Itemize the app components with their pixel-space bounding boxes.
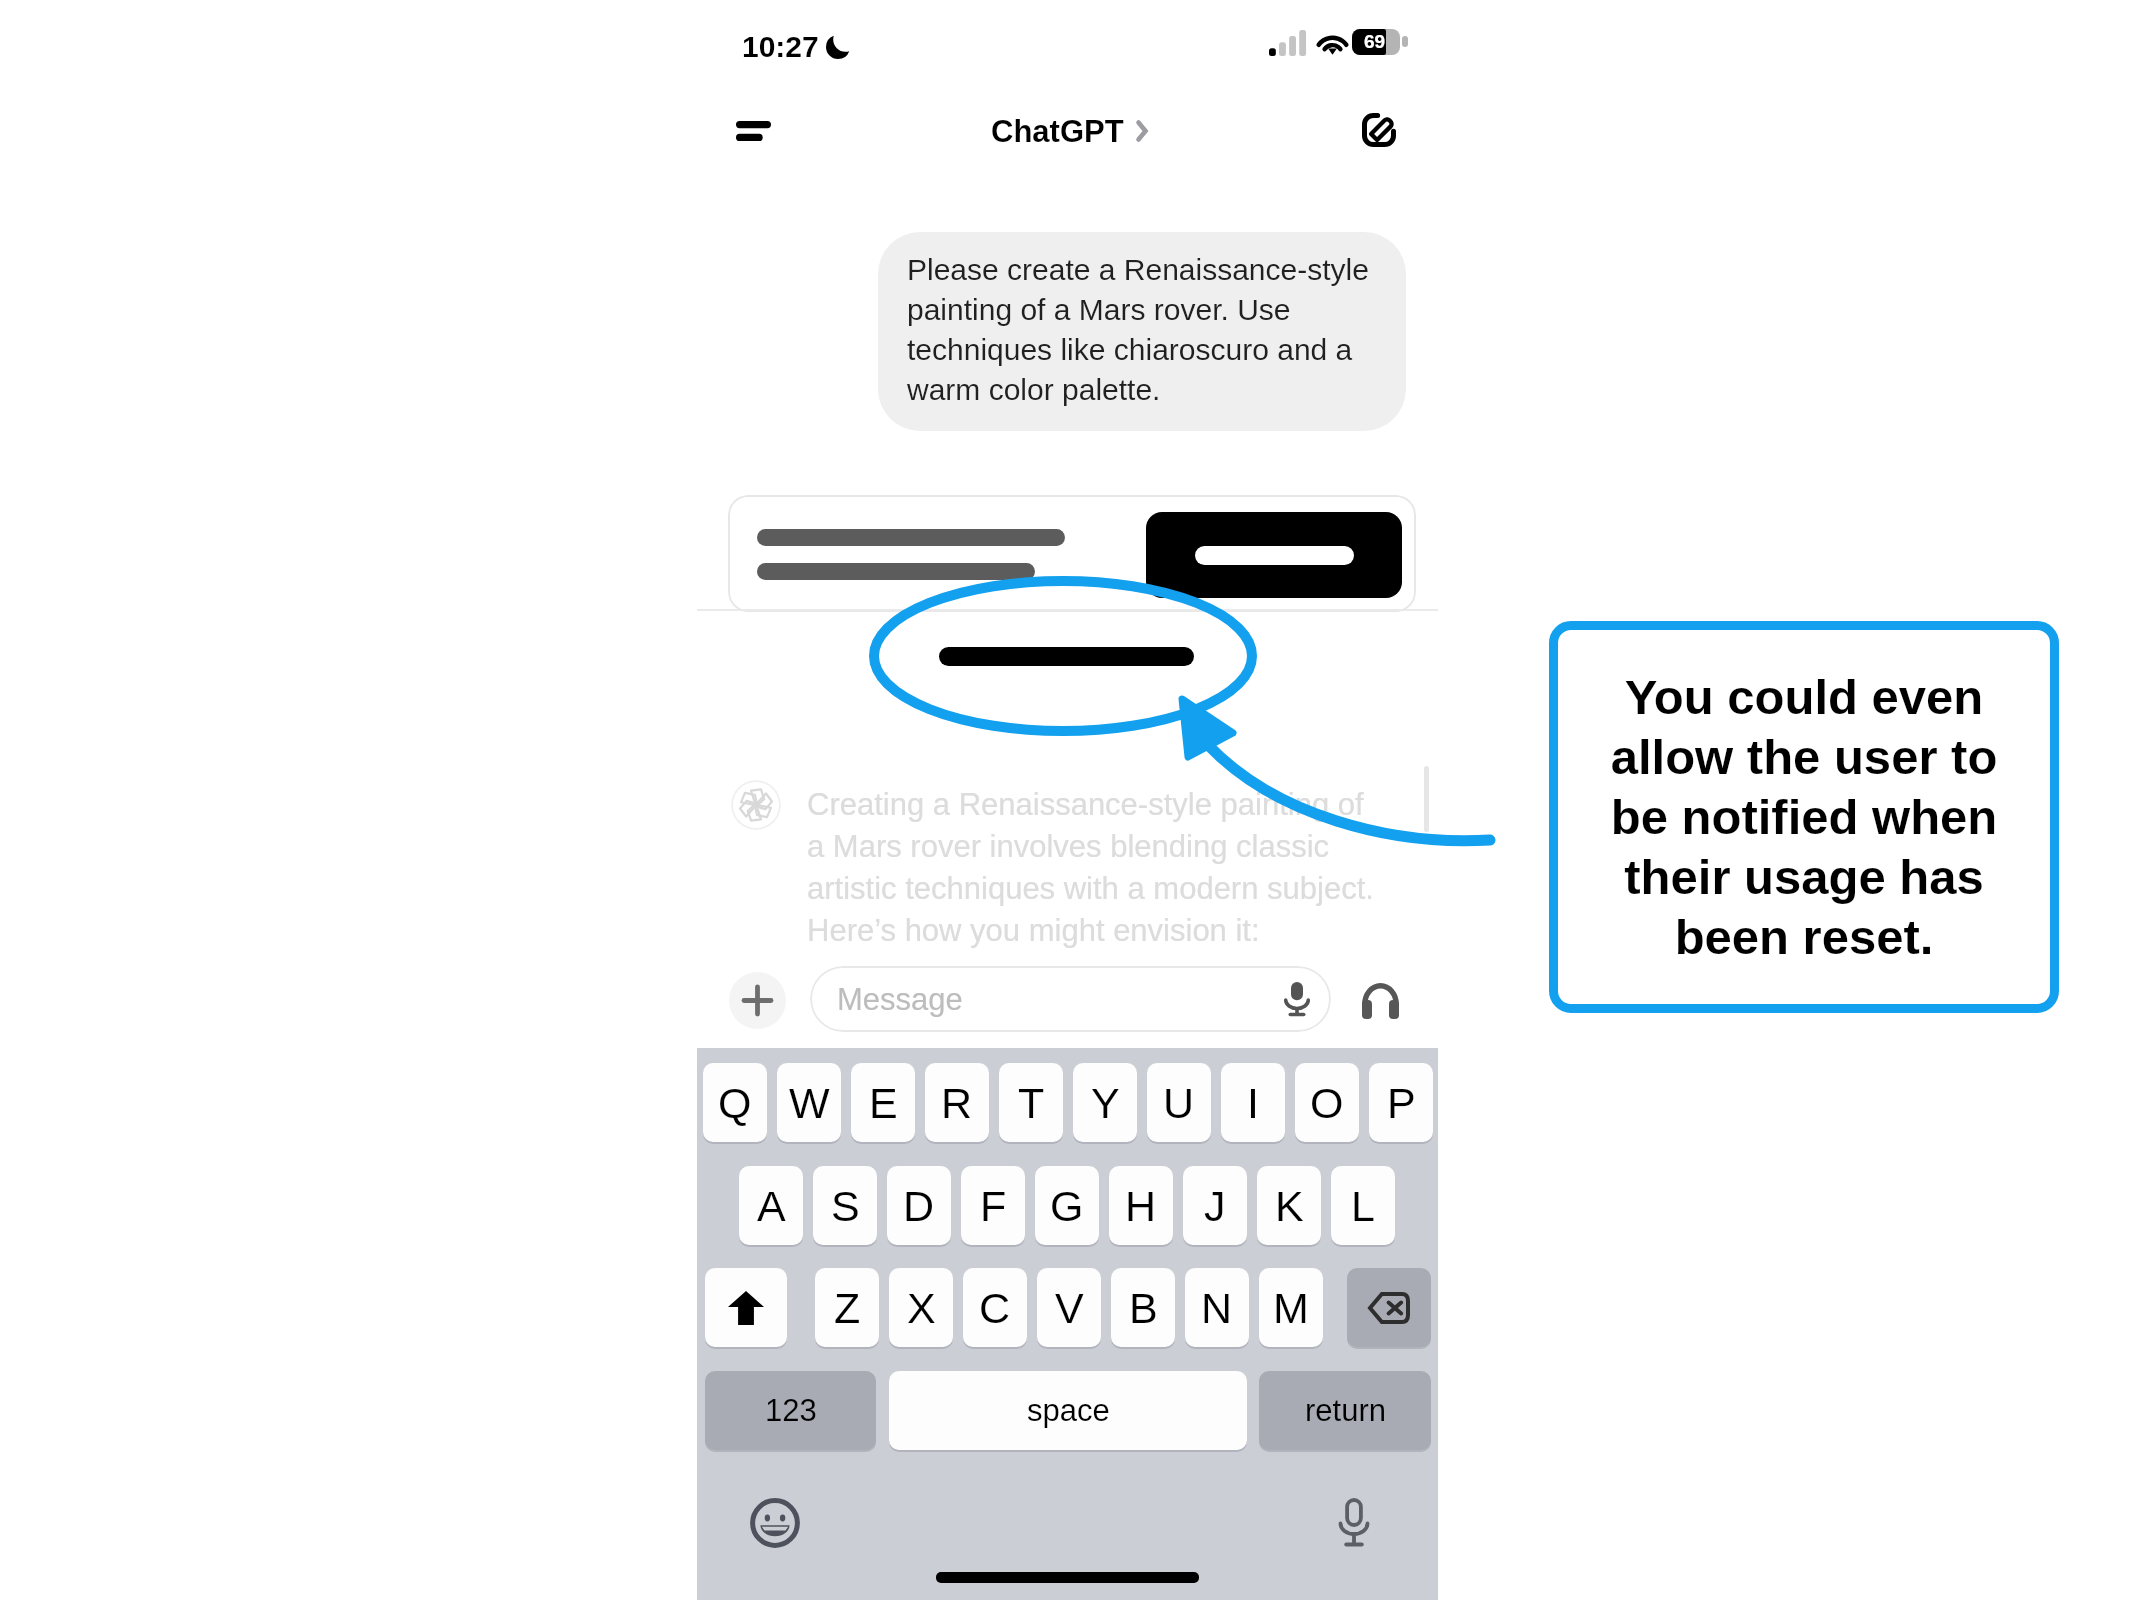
staticText: ChatGPT [991,114,1124,149]
staticText: 69 [1364,31,1386,52]
button[interactable]: I [1221,1063,1285,1142]
button[interactable]: A [739,1166,803,1245]
button[interactable]: V [1037,1268,1101,1347]
button[interactable]: ChatGPT [991,106,1148,156]
staticText: H [1125,1182,1157,1230]
staticText: O [1310,1079,1344,1127]
button[interactable]: J [1183,1166,1247,1245]
staticText: I [1247,1079,1259,1127]
staticText: V [1055,1284,1084,1332]
staticText: U [1163,1079,1195,1127]
button[interactable]: O [1295,1063,1359,1142]
button[interactable]: Please create a Renaissance-style painti… [878,232,1406,431]
staticText: return [1305,1393,1386,1428]
button[interactable]: New chat [1348,99,1410,161]
button[interactable]: 123 [705,1371,876,1450]
button[interactable]: D [887,1166,951,1245]
button[interactable]: R [925,1063,989,1142]
button[interactable]: X [889,1268,953,1347]
button[interactable]: return [1259,1371,1431,1450]
button[interactable]: Z [815,1268,879,1347]
staticText: N [1201,1284,1233,1332]
staticText: K [1275,1182,1304,1230]
staticText: A [757,1182,786,1230]
button[interactable]: Message [810,966,1331,1032]
button[interactable]: Q [703,1063,767,1142]
button[interactable]: E [851,1063,915,1142]
button[interactable]: H [1109,1166,1173,1245]
button[interactable]: U [1147,1063,1211,1142]
staticText: J [1204,1182,1226,1230]
button[interactable]: G [1035,1166,1099,1245]
button[interactable]: K [1257,1166,1321,1245]
button[interactable]: B [1111,1268,1175,1347]
staticText: D [903,1182,935,1230]
staticText: X [907,1284,936,1332]
staticText: S [831,1182,860,1230]
staticText: Q [718,1079,752,1127]
staticText: C [979,1284,1011,1332]
staticText: L [1351,1182,1375,1230]
staticText: Z [834,1284,861,1332]
button[interactable]: Dictate [1275,977,1319,1021]
button[interactable]: C [963,1268,1027,1347]
button[interactable]: L [1331,1166,1395,1245]
staticText: You could even allow the user to be noti… [1591,670,2017,964]
staticText: T [1018,1079,1045,1127]
button[interactable]: Shift [705,1268,787,1347]
staticText: space [1027,1393,1110,1428]
button[interactable] [728,495,1416,612]
button[interactable]: N [1185,1268,1249,1347]
staticText: B [1129,1284,1158,1332]
staticText: E [869,1079,898,1127]
button[interactable]: T [999,1063,1063,1142]
staticText: R [941,1079,973,1127]
staticText: F [980,1182,1007,1230]
staticText: Please create a Renaissance-style painti… [907,253,1383,406]
button[interactable]: Backspace [1347,1268,1431,1347]
staticText: P [1387,1079,1416,1127]
staticText: Message [837,982,963,1017]
button[interactable]: S [813,1166,877,1245]
button[interactable]: Dictation [1324,1493,1384,1553]
button[interactable]: Y [1073,1063,1137,1142]
button[interactable]: Emoji keyboard [745,1493,805,1553]
button[interactable]: space [889,1371,1247,1450]
button[interactable]: Voice mode [1351,972,1409,1030]
staticText: Y [1091,1079,1120,1127]
button[interactable]: Add attachment [729,972,786,1029]
staticText: W [789,1079,830,1127]
staticText: Creating a Renaissance-style painting of… [807,787,1385,947]
staticText: 123 [765,1393,817,1428]
button[interactable]: F [961,1166,1025,1245]
button[interactable]: W [777,1063,841,1142]
staticText: 10:27 [742,30,819,64]
staticText: M [1273,1284,1309,1332]
button[interactable]: M [1259,1268,1323,1347]
staticText: G [1050,1182,1084,1230]
button[interactable]: Open menu [717,100,789,162]
button[interactable]: P [1369,1063,1433,1142]
